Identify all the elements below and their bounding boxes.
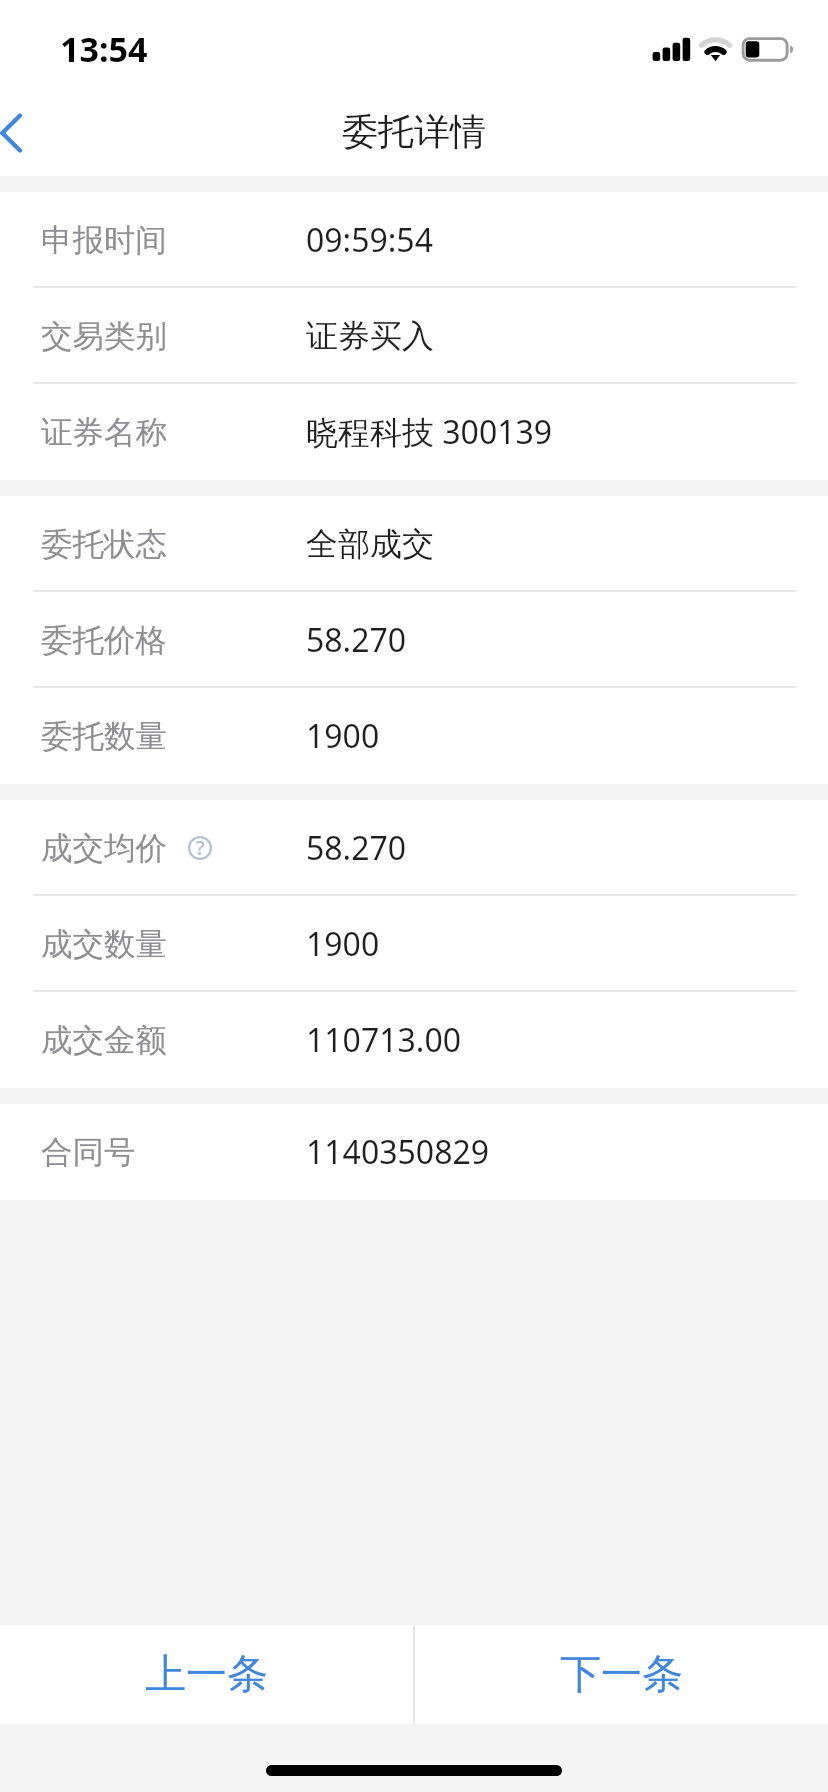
staticText: 证券名称 <box>41 413 167 453</box>
staticText: 13:54 <box>60 26 148 72</box>
staticText: 1900 <box>306 714 380 758</box>
staticText: ? <box>196 835 205 859</box>
button[interactable]: 上一条 <box>0 1625 413 1724</box>
button[interactable]: 委托数量 <box>0 688 828 784</box>
staticText: 下一条 <box>560 1649 683 1701</box>
staticText: 交易类别 <box>41 317 167 357</box>
staticText: 09:59:54 <box>306 218 433 262</box>
staticText: 申报时间 <box>41 221 167 261</box>
staticText: 成交均价 <box>41 829 167 869</box>
button[interactable]: 合同号 <box>0 1104 828 1200</box>
staticText: 58.270 <box>306 826 407 870</box>
staticText: 委托详情 <box>342 109 486 154</box>
staticText: 110713.00 <box>306 1018 462 1062</box>
staticText: 委托数量 <box>41 717 167 757</box>
staticText: 晓程科技 300139 <box>306 410 553 454</box>
staticText: 全部成交 <box>306 524 434 564</box>
staticText: 成交数量 <box>41 925 167 965</box>
button[interactable]: 委托状态 <box>0 496 828 592</box>
staticText: 1900 <box>306 922 380 966</box>
button[interactable]: Back <box>0 88 58 176</box>
staticText: 委托价格 <box>41 621 167 661</box>
button[interactable]: 交易类别 <box>0 288 828 384</box>
staticText: 合同号 <box>41 1133 136 1173</box>
button[interactable]: 申报时间 <box>0 192 828 288</box>
staticText: 证券买入 <box>306 316 434 356</box>
button[interactable]: 证券名称 <box>0 384 828 480</box>
staticText: 1140350829 <box>306 1130 490 1174</box>
button[interactable]: Help <box>188 836 212 860</box>
button[interactable]: 下一条 <box>415 1625 828 1724</box>
button[interactable]: 成交均价 <box>0 800 828 896</box>
button[interactable]: 成交金额 <box>0 992 828 1088</box>
staticText: 成交金额 <box>41 1021 167 1061</box>
button[interactable]: 成交数量 <box>0 896 828 992</box>
staticText: 委托状态 <box>41 525 167 565</box>
button[interactable]: 委托价格 <box>0 592 828 688</box>
staticText: 上一条 <box>145 1649 268 1701</box>
staticText: 58.270 <box>306 618 407 662</box>
